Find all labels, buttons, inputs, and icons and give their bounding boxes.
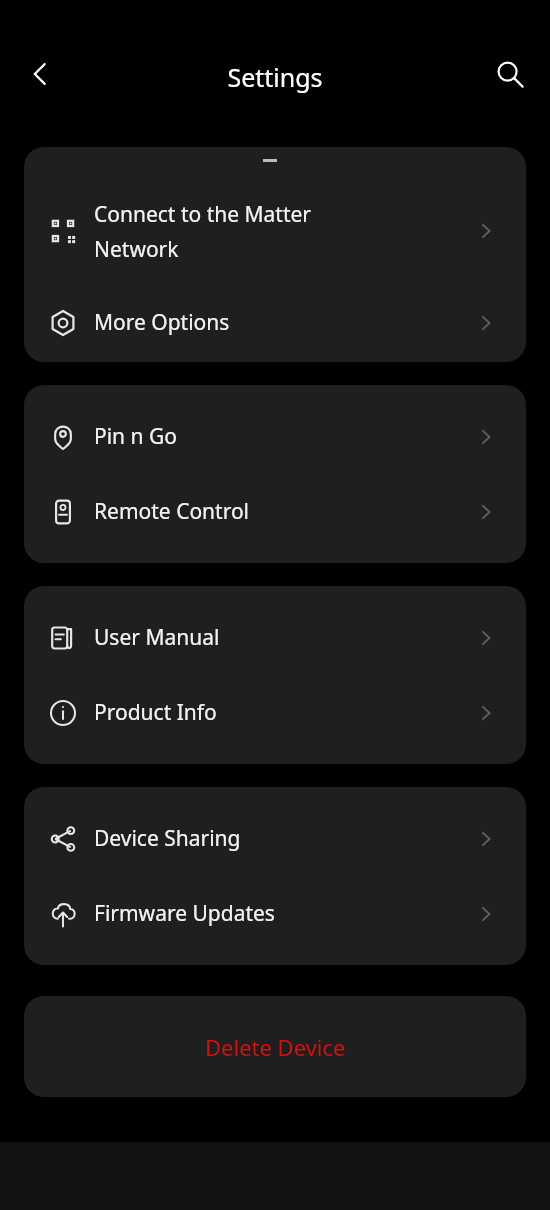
button[interactable]: Firmware Updates bbox=[24, 876, 526, 951]
staticText: User Manual bbox=[94, 623, 475, 652]
staticText: Settings bbox=[227, 60, 323, 94]
button[interactable]: Search bbox=[482, 46, 538, 102]
button[interactable]: User Manual bbox=[24, 600, 526, 675]
button[interactable]: Product Info bbox=[24, 675, 526, 750]
button[interactable]: Remote Control bbox=[24, 474, 526, 549]
staticText: Device Sharing bbox=[94, 824, 475, 853]
staticText: Remote Control bbox=[94, 497, 475, 526]
staticText: Connect to the Matter Network bbox=[94, 200, 475, 263]
staticText: Firmware Updates bbox=[94, 899, 475, 928]
staticText: More Options bbox=[94, 308, 475, 337]
staticText: Pin n Go bbox=[94, 422, 475, 451]
button[interactable]: Delete Device bbox=[24, 996, 526, 1097]
staticText: Product Info bbox=[94, 698, 475, 727]
button[interactable]: Pin n Go bbox=[24, 399, 526, 474]
button[interactable]: Back bbox=[12, 46, 68, 102]
button[interactable]: Connect to the Matter Network bbox=[24, 179, 526, 283]
button[interactable]: More Options bbox=[24, 283, 526, 362]
button[interactable]: Device Sharing bbox=[24, 801, 526, 876]
staticText: Delete Device bbox=[205, 1032, 346, 1062]
